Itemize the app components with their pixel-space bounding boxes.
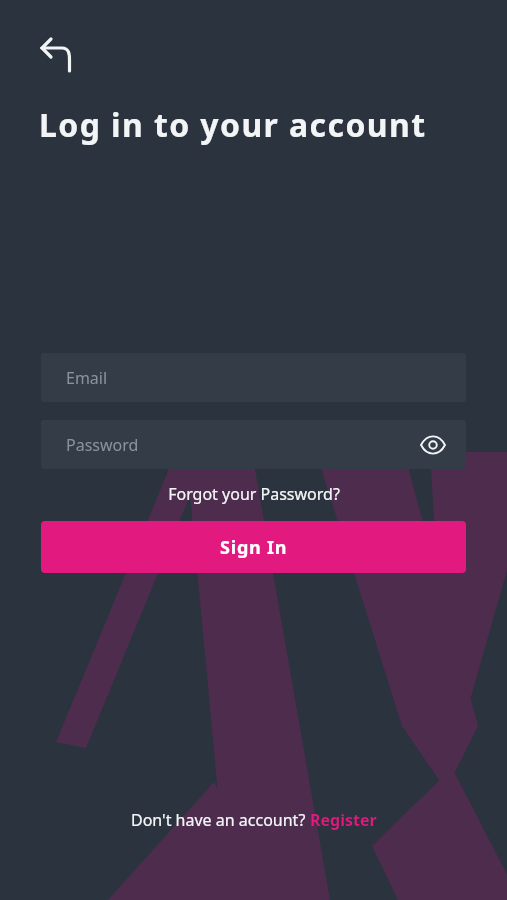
button[interactable]: Register xyxy=(310,809,377,831)
button[interactable]: Sign In xyxy=(41,521,466,573)
staticText: Don't have an account? xyxy=(131,809,310,831)
staticText: Register xyxy=(310,809,377,831)
staticText: Forgot your Password? xyxy=(168,483,340,505)
staticText: Sign In xyxy=(220,535,288,560)
staticText: Password xyxy=(66,434,139,456)
staticText: Email xyxy=(66,367,108,389)
button[interactable]: Forgot your Password? xyxy=(160,481,348,507)
staticText: Log in to your account xyxy=(39,103,427,147)
button[interactable]: Email xyxy=(41,353,466,402)
button[interactable]: Show password xyxy=(414,426,452,464)
button[interactable]: Password xyxy=(41,420,466,469)
button[interactable]: Back xyxy=(30,26,82,78)
